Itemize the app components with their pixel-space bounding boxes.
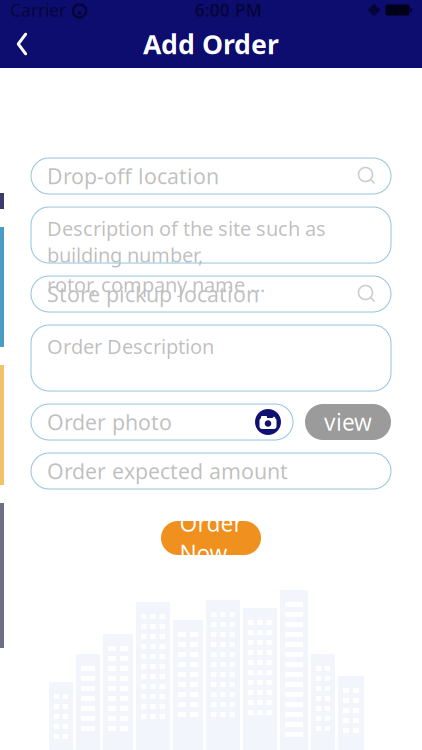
staticText: Carrier xyxy=(10,0,66,21)
staticText: 6:00 PM xyxy=(195,0,262,21)
staticText: Order photo xyxy=(47,408,172,436)
button[interactable]: Order expected amount xyxy=(31,453,391,489)
button[interactable]: Store pickup location xyxy=(31,276,391,312)
staticText: Order expected amount xyxy=(47,457,288,485)
staticText: Drop-off location xyxy=(47,162,219,190)
button[interactable]: Description of the site such as building… xyxy=(31,207,391,263)
button[interactable]: Order Now xyxy=(161,521,261,555)
button[interactable]: view xyxy=(305,404,391,440)
button[interactable]: Order Description xyxy=(31,325,391,391)
staticText: Store pickup location xyxy=(47,280,259,308)
staticText: Description of the site such as building… xyxy=(47,215,326,268)
staticText: view xyxy=(324,407,372,437)
staticText: Add Order xyxy=(143,26,279,62)
button[interactable]: Back xyxy=(0,22,44,66)
button[interactable]: Order photo xyxy=(31,404,293,440)
button[interactable]: Drop-off location xyxy=(31,158,391,194)
staticText: rotor, company name ... xyxy=(47,271,265,298)
staticText: Order Now xyxy=(179,508,242,568)
staticText: Order Description xyxy=(47,333,214,360)
